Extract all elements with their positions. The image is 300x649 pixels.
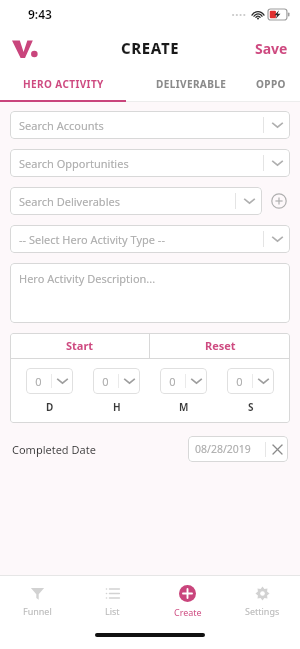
staticText: -- Select Hero Activity Type -- — [19, 232, 263, 247]
staticText: Hero Activity Description... — [19, 271, 156, 286]
button[interactable]: HERO ACTIVITY — [0, 68, 126, 100]
staticText: M — [179, 400, 189, 414]
staticText: Start — [66, 338, 94, 353]
staticText: H — [113, 400, 121, 414]
staticText: Reset — [205, 338, 236, 353]
button[interactable]: 0 — [227, 368, 274, 394]
staticText: 0 — [160, 374, 185, 389]
button[interactable]: Create — [150, 576, 225, 626]
button[interactable]: Settings — [225, 576, 300, 626]
staticText: 9:43 — [28, 6, 52, 22]
staticText: Funnel — [23, 605, 52, 617]
button[interactable]: 0 — [160, 368, 207, 394]
staticText: List — [105, 605, 120, 617]
other: Home — [12, 38, 38, 58]
staticText: D — [46, 400, 54, 414]
staticText: Search Deliverables — [19, 194, 235, 209]
button[interactable]: Start — [10, 333, 149, 358]
staticText: S — [248, 400, 254, 414]
button[interactable]: Search Deliverables — [10, 187, 262, 215]
staticText: CREATE — [121, 38, 180, 58]
button[interactable]: OPPO — [256, 68, 300, 100]
button[interactable]: -- Select Hero Activity Type -- — [10, 225, 290, 253]
staticText: 0 — [93, 374, 118, 389]
staticText: DELIVERABLE — [156, 77, 227, 91]
button[interactable]: Add deliverable — [268, 190, 290, 212]
staticText: 0 — [26, 374, 51, 389]
staticText: Save — [255, 39, 288, 58]
button[interactable]: 0 — [26, 368, 73, 394]
button[interactable]: Hero Activity Description... — [10, 263, 290, 323]
button[interactable]: Funnel — [0, 576, 75, 626]
button[interactable]: DELIVERABLE — [126, 68, 256, 100]
staticText: Settings — [245, 605, 280, 617]
staticText: Search Opportunities — [19, 156, 263, 171]
staticText: 0 — [227, 374, 252, 389]
staticText: 08/28/2019 — [195, 442, 265, 456]
button[interactable]: 08/28/2019 — [188, 436, 288, 462]
button[interactable]: Search Opportunities — [10, 149, 290, 177]
staticText: OPPO — [256, 77, 286, 91]
button[interactable]: 0 — [93, 368, 140, 394]
button[interactable]: List — [75, 576, 150, 626]
staticText: HERO ACTIVITY — [23, 77, 104, 91]
button[interactable]: Search Accounts — [10, 111, 290, 139]
staticText: Search Accounts — [19, 118, 263, 133]
button[interactable]: Save — [243, 31, 300, 66]
staticText: Completed Date — [12, 442, 96, 457]
staticText: Create — [174, 606, 202, 618]
button[interactable]: Reset — [150, 333, 290, 358]
